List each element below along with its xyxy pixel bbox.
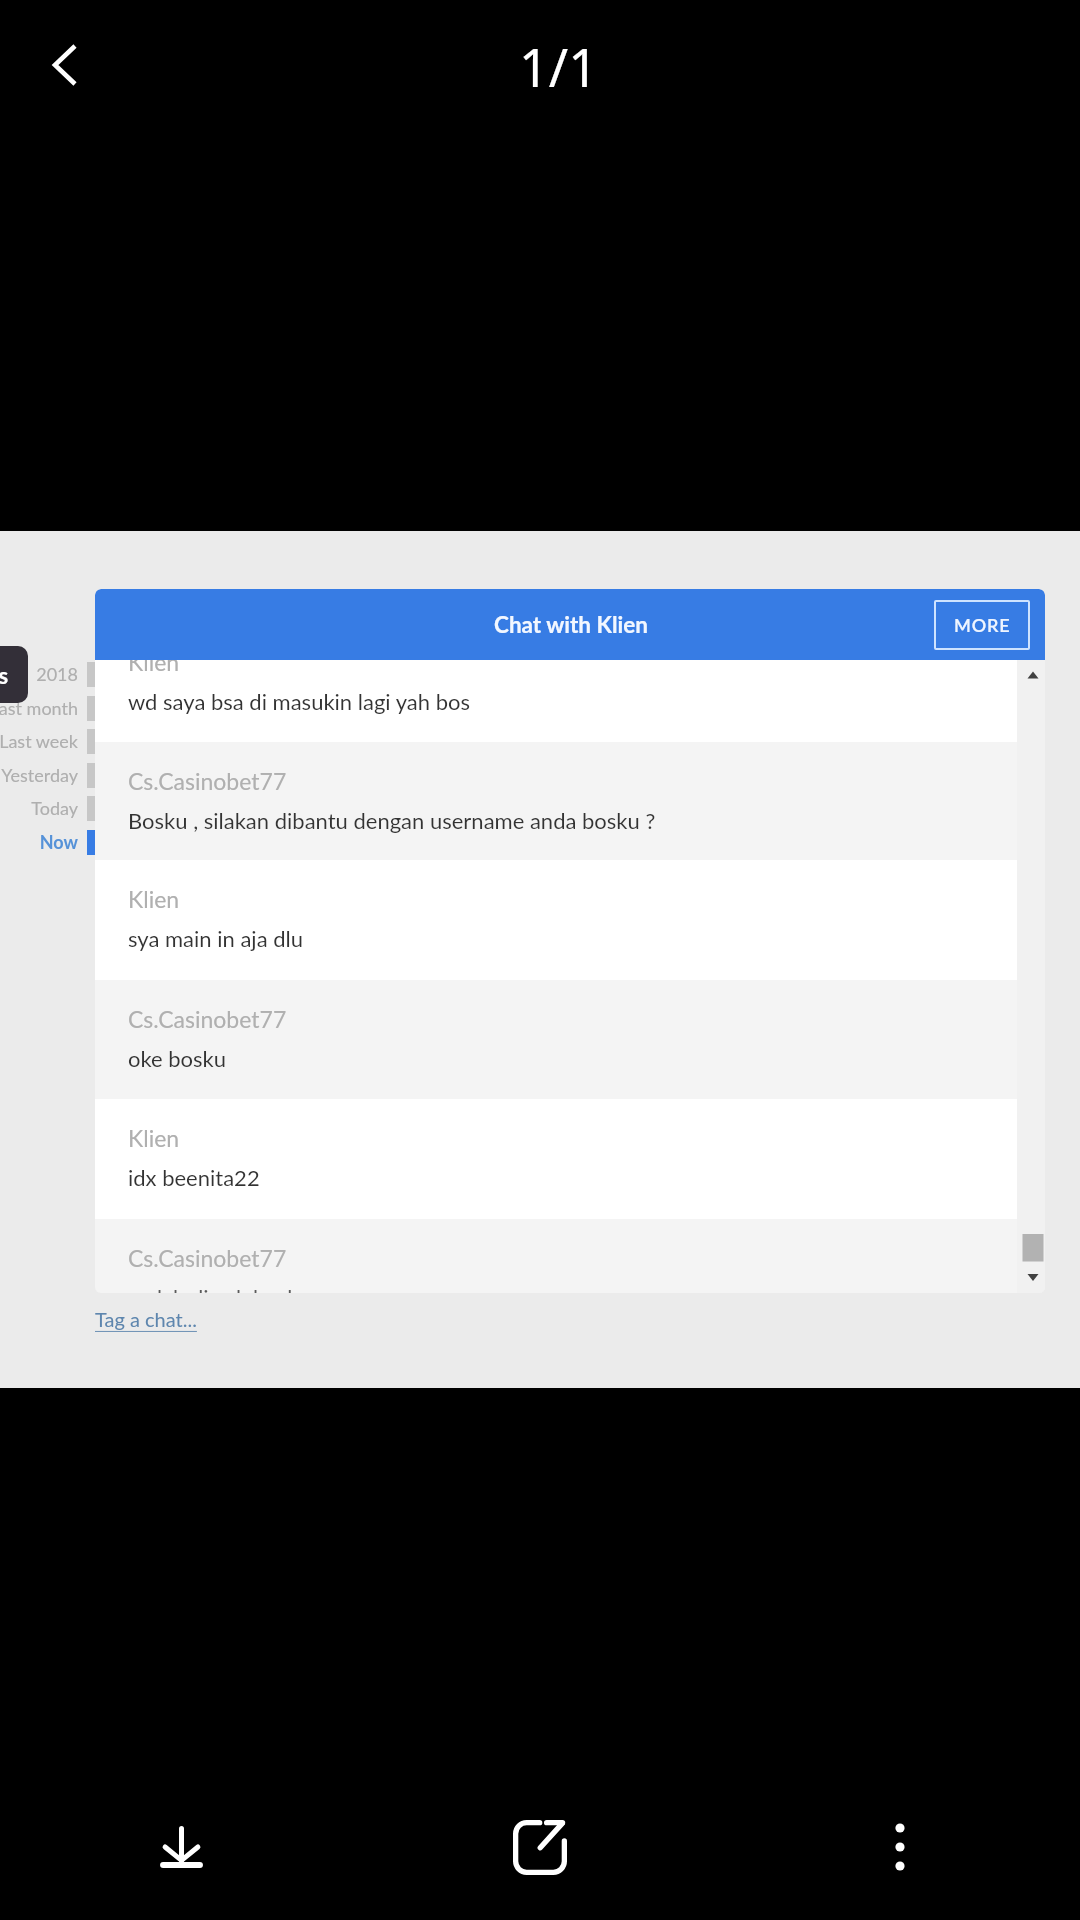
staticText: Klien (128, 660, 180, 676)
staticText: Cs.Casinobet77 (128, 767, 287, 795)
button[interactable]: Chat with Klien (95, 589, 1045, 660)
button[interactable]: 2018 (0, 660, 78, 688)
staticText: Now (39, 831, 78, 853)
button[interactable]: Klien (95, 660, 1045, 742)
staticText: Last week (0, 730, 78, 752)
staticText: sudah di cek bosku (128, 1284, 311, 1293)
staticText: Last month (0, 697, 78, 719)
button[interactable]: MORE (934, 600, 1030, 650)
button[interactable]: Tag a chat... (95, 1307, 197, 1331)
button[interactable]: Last week (0, 727, 78, 755)
staticText: idx beenita22 (128, 1164, 260, 1190)
button[interactable]: Today (0, 794, 78, 822)
button[interactable]: Cs.Casinobet77 (95, 742, 1045, 860)
staticText: Klien (128, 1124, 180, 1152)
staticText: oke bosku (128, 1045, 227, 1071)
button[interactable]: Cs.Casinobet77 (95, 1219, 1045, 1293)
staticText: Cs.Casinobet77 (128, 1244, 287, 1272)
button[interactable]: Cs.Casinobet77 (95, 980, 1045, 1099)
button[interactable]: Yesterday (0, 761, 78, 789)
staticText: Today (31, 797, 78, 819)
button[interactable]: Back (22, 22, 108, 108)
button[interactable]: Last month (0, 694, 78, 722)
staticText: wd saya bsa di masukin lagi yah bos (128, 688, 470, 714)
staticText: 2018 (36, 663, 78, 685)
staticText: 1/1 (519, 31, 598, 102)
staticText: Yesterday (1, 764, 78, 786)
button[interactable]: Download (133, 1799, 229, 1895)
staticText: Klien (128, 885, 180, 913)
button[interactable]: Now (0, 828, 78, 856)
staticText: Tag a chat... (95, 1307, 197, 1331)
staticText: Chat with Klien (494, 611, 648, 638)
button[interactable]: Share (492, 1799, 588, 1895)
staticText: sya main in aja dlu (128, 925, 303, 951)
staticText: Bosku , silakan dibantu dengan username … (128, 807, 656, 833)
staticText: Cs.Casinobet77 (128, 1005, 287, 1033)
staticText: MORE (954, 614, 1011, 636)
button[interactable]: Klien (95, 860, 1045, 980)
staticText: cs (0, 662, 9, 688)
button[interactable]: More options (852, 1799, 948, 1895)
button[interactable]: Klien (95, 1099, 1045, 1219)
